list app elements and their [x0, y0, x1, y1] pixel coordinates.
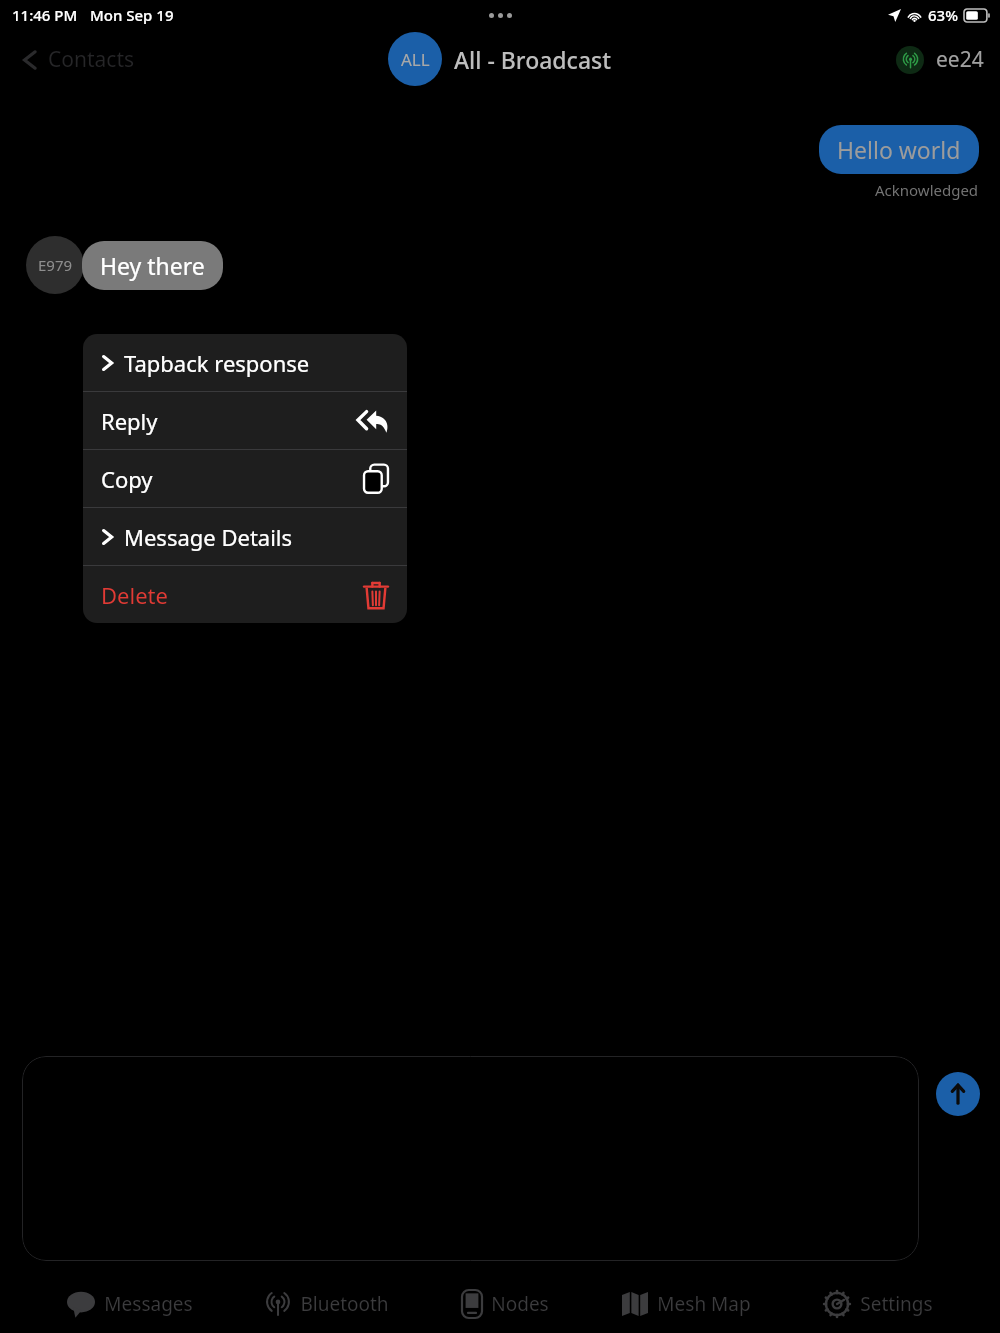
staticText: Hello world [837, 134, 961, 165]
other: Copy [363, 464, 389, 494]
staticText: Hey there [100, 250, 205, 281]
button[interactable]: Message Details [83, 508, 407, 565]
button[interactable]: Send [936, 1072, 980, 1116]
other: Delete [363, 580, 389, 610]
staticText: Copy [101, 464, 153, 494]
staticText: Settings [860, 1291, 933, 1317]
staticText: Nodes [491, 1291, 549, 1317]
button[interactable]: Delete [83, 566, 407, 623]
staticText: Message Details [124, 522, 293, 552]
staticText: Mon Sep 19 [90, 5, 174, 25]
staticText: Mesh Map [657, 1291, 751, 1317]
button[interactable]: Hey there [82, 241, 223, 290]
button[interactable]: ALL [388, 32, 612, 86]
staticText: Delete [101, 580, 168, 610]
button[interactable]: Contacts [0, 39, 147, 80]
other: Reply [357, 408, 389, 434]
button[interactable] [22, 1056, 919, 1261]
staticText: Messages [104, 1291, 193, 1317]
staticText: 63% [928, 5, 958, 25]
staticText: ALL [401, 48, 430, 71]
staticText: Reply [101, 406, 158, 436]
staticText: All - Broadcast [454, 44, 612, 75]
staticText: E979 [38, 255, 73, 275]
staticText: 11:46 PM [12, 5, 78, 25]
button[interactable]: Bluetooth [259, 1285, 395, 1323]
button[interactable]: Nodes [456, 1284, 555, 1324]
button[interactable]: Hello world [819, 125, 979, 174]
staticText: ee24 [936, 45, 984, 74]
other: Node connected [896, 46, 924, 74]
button[interactable]: Settings [817, 1284, 939, 1324]
button[interactable]: Messages [61, 1284, 199, 1324]
staticText: Tapback response [124, 348, 310, 378]
button[interactable]: Copy [83, 450, 407, 507]
staticText: Acknowledged [875, 180, 979, 200]
button[interactable]: Tapback response [83, 334, 407, 391]
button[interactable]: Reply [83, 392, 407, 449]
staticText: Contacts [48, 45, 135, 74]
button[interactable]: Node connected [896, 45, 1000, 74]
staticText: Bluetooth [300, 1291, 389, 1317]
button[interactable]: Mesh Map [616, 1285, 757, 1323]
